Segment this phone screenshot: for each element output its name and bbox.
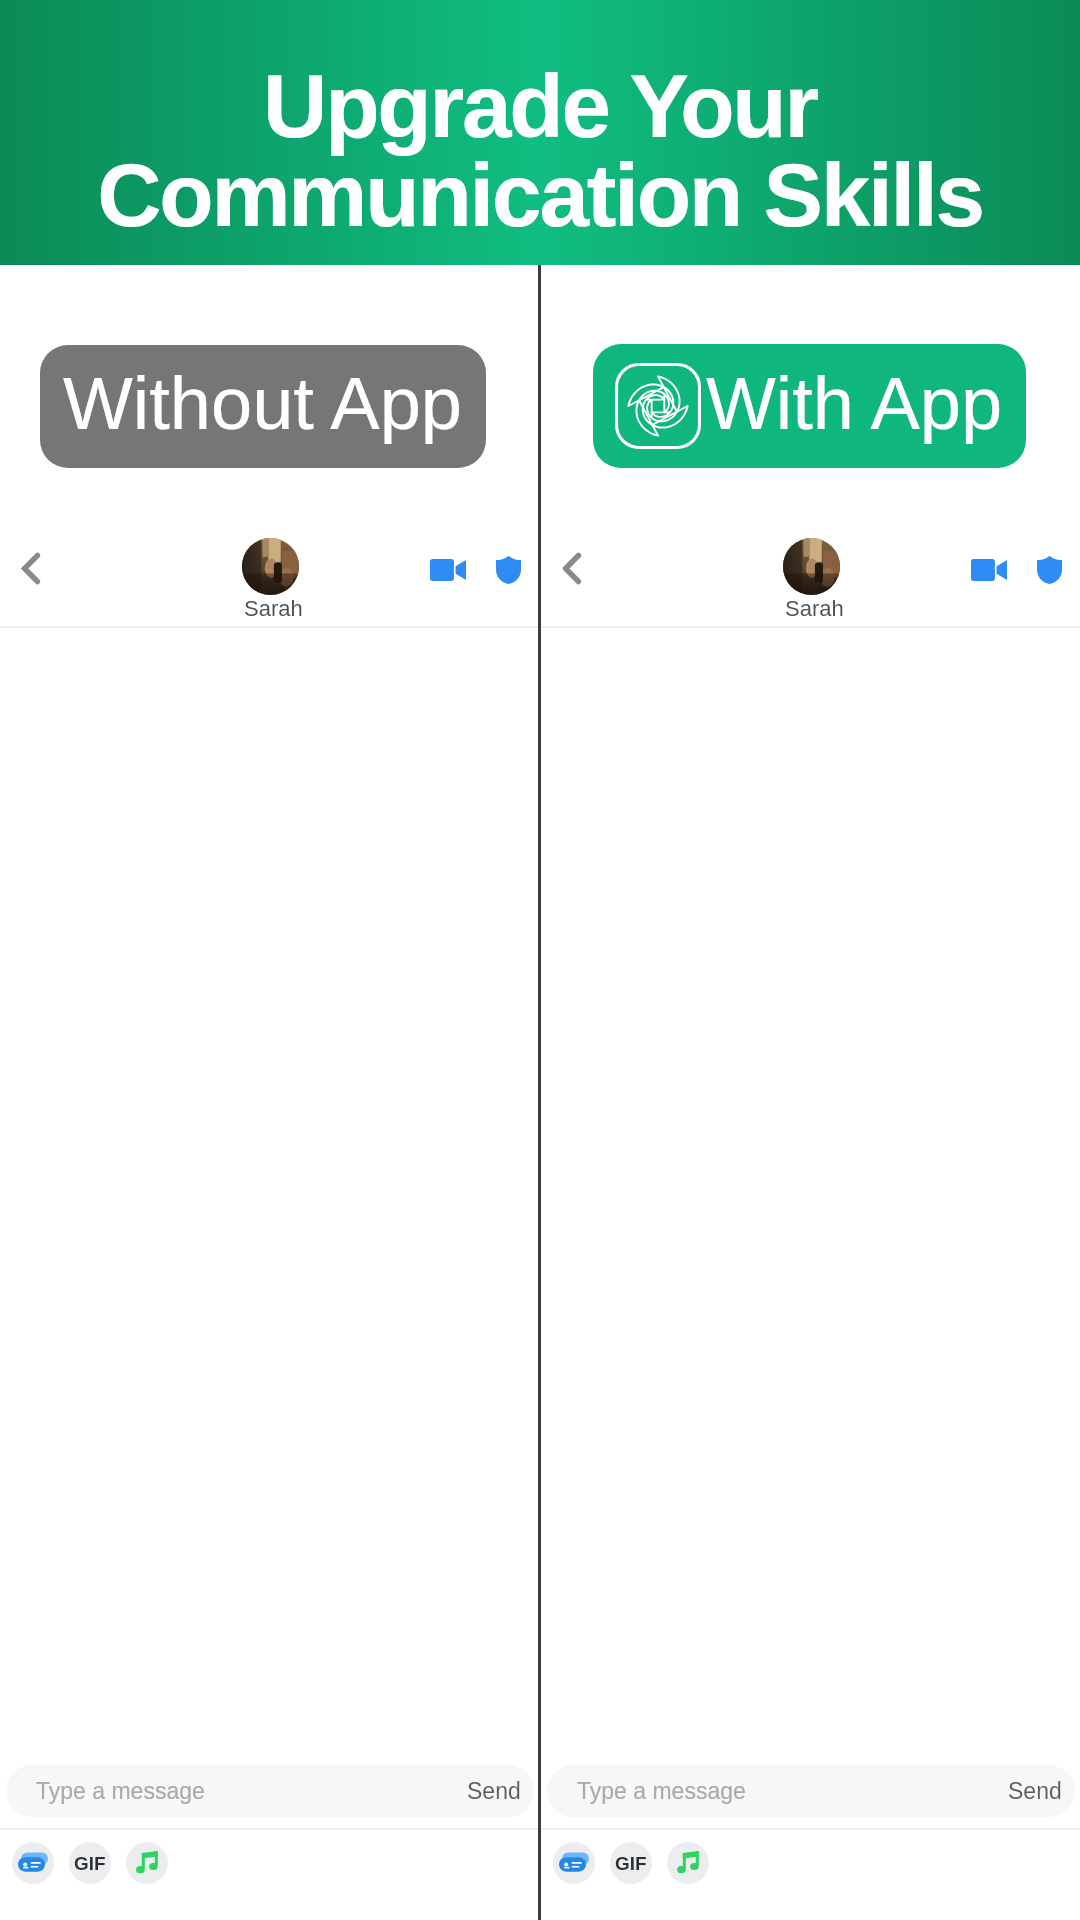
button[interactable]: Type a message bbox=[6, 1765, 534, 1817]
button[interactable]: GIF bbox=[610, 1842, 652, 1884]
button[interactable]: With App bbox=[593, 344, 1026, 468]
staticText: GIF bbox=[74, 1853, 106, 1874]
staticText: Sarah bbox=[244, 596, 303, 621]
button[interactable]: Back bbox=[3, 540, 59, 596]
button[interactable]: Security bbox=[480, 542, 536, 598]
staticText: Type a message bbox=[577, 1778, 746, 1804]
staticText: Send bbox=[467, 1778, 521, 1804]
staticText: GIF bbox=[615, 1853, 647, 1874]
button[interactable]: Video call bbox=[961, 542, 1017, 598]
button[interactable]: Video call bbox=[420, 542, 476, 598]
button[interactable]: Stickers bbox=[553, 1842, 595, 1884]
staticText: Sarah bbox=[785, 596, 844, 621]
staticText: Type a message bbox=[36, 1778, 205, 1804]
button[interactable]: Music bbox=[667, 1842, 709, 1884]
button[interactable]: GIF bbox=[69, 1842, 111, 1884]
staticText: With App bbox=[706, 362, 1003, 445]
staticText: Upgrade Your Communication Skills bbox=[0, 56, 1080, 245]
button[interactable]: Stickers bbox=[12, 1842, 54, 1884]
staticText: Send bbox=[1008, 1778, 1062, 1804]
staticText: Without App bbox=[63, 362, 463, 445]
button[interactable]: Back bbox=[544, 540, 600, 596]
button[interactable]: Type a message bbox=[547, 1765, 1075, 1817]
button[interactable]: Music bbox=[126, 1842, 168, 1884]
button[interactable]: Without App bbox=[40, 345, 486, 468]
button[interactable]: Security bbox=[1021, 542, 1077, 598]
